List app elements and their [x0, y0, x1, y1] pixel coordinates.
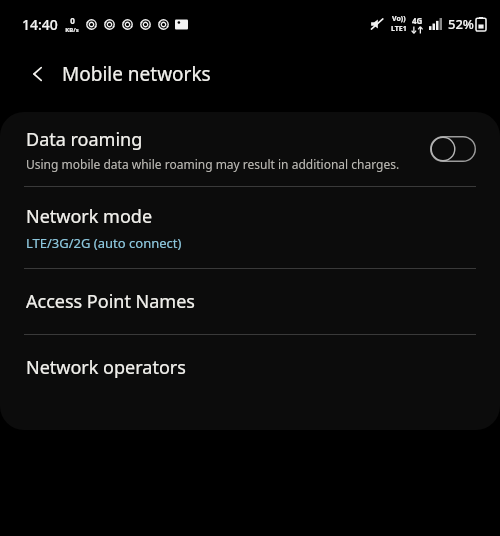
staticText: Network mode [26, 204, 153, 229]
button[interactable]: Network mode [0, 187, 500, 268]
staticText: LTE/3G/2G (auto connect) [26, 234, 182, 252]
button[interactable]: Access Point Names [0, 269, 500, 334]
staticText: Vo)) [392, 14, 406, 24]
staticText: Mobile networks [62, 61, 211, 87]
staticText: 4G [412, 15, 423, 26]
button[interactable]: Network operators [0, 335, 500, 400]
button[interactable]: Data roaming toggle, off [430, 136, 476, 162]
staticText: Access Point Names [26, 289, 195, 314]
staticText: LTE1 [391, 24, 407, 34]
button[interactable]: Back [18, 54, 58, 94]
staticText: Data roaming [26, 127, 143, 152]
staticText: 52% [448, 15, 474, 33]
staticText: 0 [70, 15, 75, 26]
staticText: Using mobile data while roaming may resu… [26, 156, 400, 172]
button[interactable]: Data roaming [0, 112, 500, 186]
staticText: 14:40 [22, 15, 58, 34]
staticText: Network operators [26, 355, 186, 380]
staticText: KB/s [65, 26, 79, 34]
